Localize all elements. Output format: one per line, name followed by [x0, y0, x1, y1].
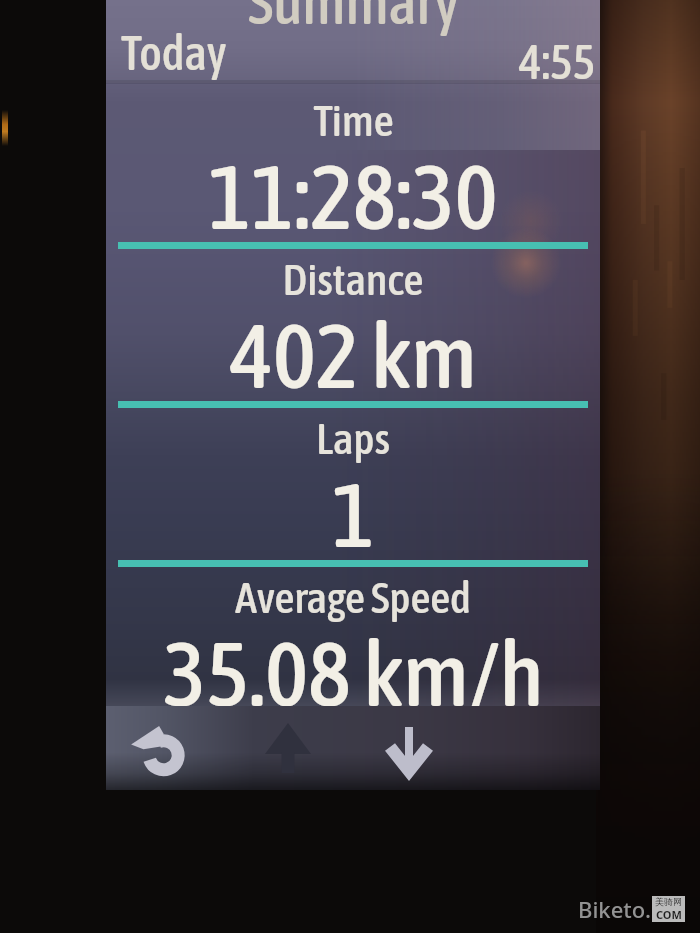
staticText: 1: [332, 462, 375, 566]
staticText: 11:28:30: [208, 144, 498, 248]
button[interactable]: Distance: [106, 242, 600, 401]
staticText: Distance: [282, 254, 424, 304]
staticText: Laps: [316, 413, 390, 463]
button[interactable]: Scroll up: [230, 706, 346, 790]
button[interactable]: Average Speed: [106, 560, 600, 719]
staticText: 35.08 km/h: [163, 621, 544, 725]
button[interactable]: Back: [106, 710, 209, 794]
button[interactable]: Laps: [106, 401, 600, 560]
staticText: Biketo.: [578, 894, 652, 924]
staticText: COM: [656, 907, 682, 922]
staticText: 4:55: [519, 34, 596, 89]
staticText: 402 km: [230, 303, 477, 407]
button[interactable]: Scroll down: [351, 712, 467, 796]
staticText: Today: [121, 25, 227, 80]
button[interactable]: Time: [106, 83, 600, 242]
staticText: Summary: [248, 0, 459, 37]
staticText: Average Speed: [235, 572, 471, 622]
staticText: 美骑网: [655, 896, 682, 907]
staticText: Time: [313, 95, 394, 145]
